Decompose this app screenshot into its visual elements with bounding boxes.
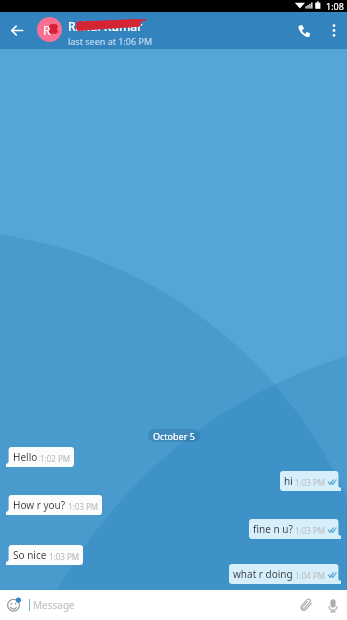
- staticText: Message: [33, 598, 75, 612]
- button[interactable]: fine n u?: [249, 519, 341, 539]
- staticText: October 5: [153, 430, 195, 442]
- button[interactable]: what r doing: [229, 564, 341, 584]
- staticText: So nice: [13, 548, 47, 562]
- button[interactable]: Back: [0, 12, 33, 49]
- staticText: 1:03 PM: [295, 477, 326, 488]
- staticText: last seen at 1:06 PM: [68, 35, 153, 47]
- button[interactable]: Voice message: [319, 590, 347, 620]
- button[interactable]: Call: [288, 12, 320, 49]
- staticText: Hello: [13, 450, 38, 464]
- staticText: 1:08: [326, 0, 344, 12]
- staticText: How r you?: [13, 498, 66, 512]
- button[interactable]: October 5: [148, 429, 200, 442]
- staticText: what r doing: [233, 567, 293, 581]
- button[interactable]: So nice: [6, 545, 83, 565]
- button[interactable]: How r you?: [6, 495, 102, 515]
- button[interactable]: hi: [280, 471, 341, 491]
- button[interactable]: More options: [320, 12, 347, 49]
- staticText: fine n u?: [253, 522, 293, 536]
- staticText: 1:03 PM: [49, 551, 80, 562]
- staticText: hi: [284, 474, 293, 488]
- staticText: 1:02 PM: [40, 453, 71, 464]
- staticText: 1:03 PM: [68, 501, 99, 512]
- staticText: 1:03 PM: [295, 525, 326, 536]
- button[interactable]: Hello: [6, 447, 74, 467]
- staticText: Rahul Kumar: [68, 18, 143, 34]
- staticText: R: [43, 22, 51, 38]
- staticText: 1:04 PM: [295, 570, 326, 581]
- button[interactable]: Attach: [293, 590, 319, 620]
- button[interactable]: Emoji: [4, 590, 27, 620]
